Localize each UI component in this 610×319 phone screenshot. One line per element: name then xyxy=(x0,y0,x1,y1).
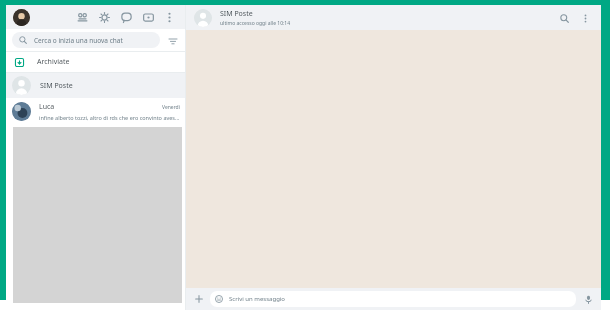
staticText: SIM Poste xyxy=(220,9,253,19)
button[interactable]: Channels xyxy=(139,8,157,26)
button[interactable]: Status xyxy=(95,8,113,26)
button[interactable]: Menu xyxy=(577,10,593,26)
button[interactable]: Menu xyxy=(160,8,178,26)
staticText: Cerca o inizia una nuova chat xyxy=(34,36,123,45)
staticText: ultimo accesso oggi alle 10:14 xyxy=(220,20,291,27)
button[interactable]: Profile xyxy=(13,9,30,26)
button[interactable]: New chat xyxy=(117,8,135,26)
button[interactable]: Search xyxy=(556,10,572,26)
button[interactable]: Attach xyxy=(192,292,206,306)
staticText: Scrivi un messaggio xyxy=(229,295,285,303)
button[interactable]: Voice message xyxy=(581,292,595,306)
button[interactable]: Archiviate xyxy=(6,52,185,72)
staticText: Venerdì xyxy=(162,104,180,111)
staticText: Luca xyxy=(39,102,55,112)
button[interactable]: Cerca o inizia una nuova chat xyxy=(12,32,160,48)
staticText: infine alberto tozzi, altro di rds che e… xyxy=(39,114,180,121)
button[interactable]: Luca xyxy=(6,98,185,124)
button[interactable]: Scrivi un messaggio xyxy=(210,291,576,307)
button[interactable]: SIM Poste xyxy=(6,73,185,98)
staticText: SIM Poste xyxy=(40,81,73,91)
button[interactable]: Filter xyxy=(166,34,179,47)
staticText: Archiviate xyxy=(37,57,70,67)
button[interactable]: Community xyxy=(73,8,91,26)
